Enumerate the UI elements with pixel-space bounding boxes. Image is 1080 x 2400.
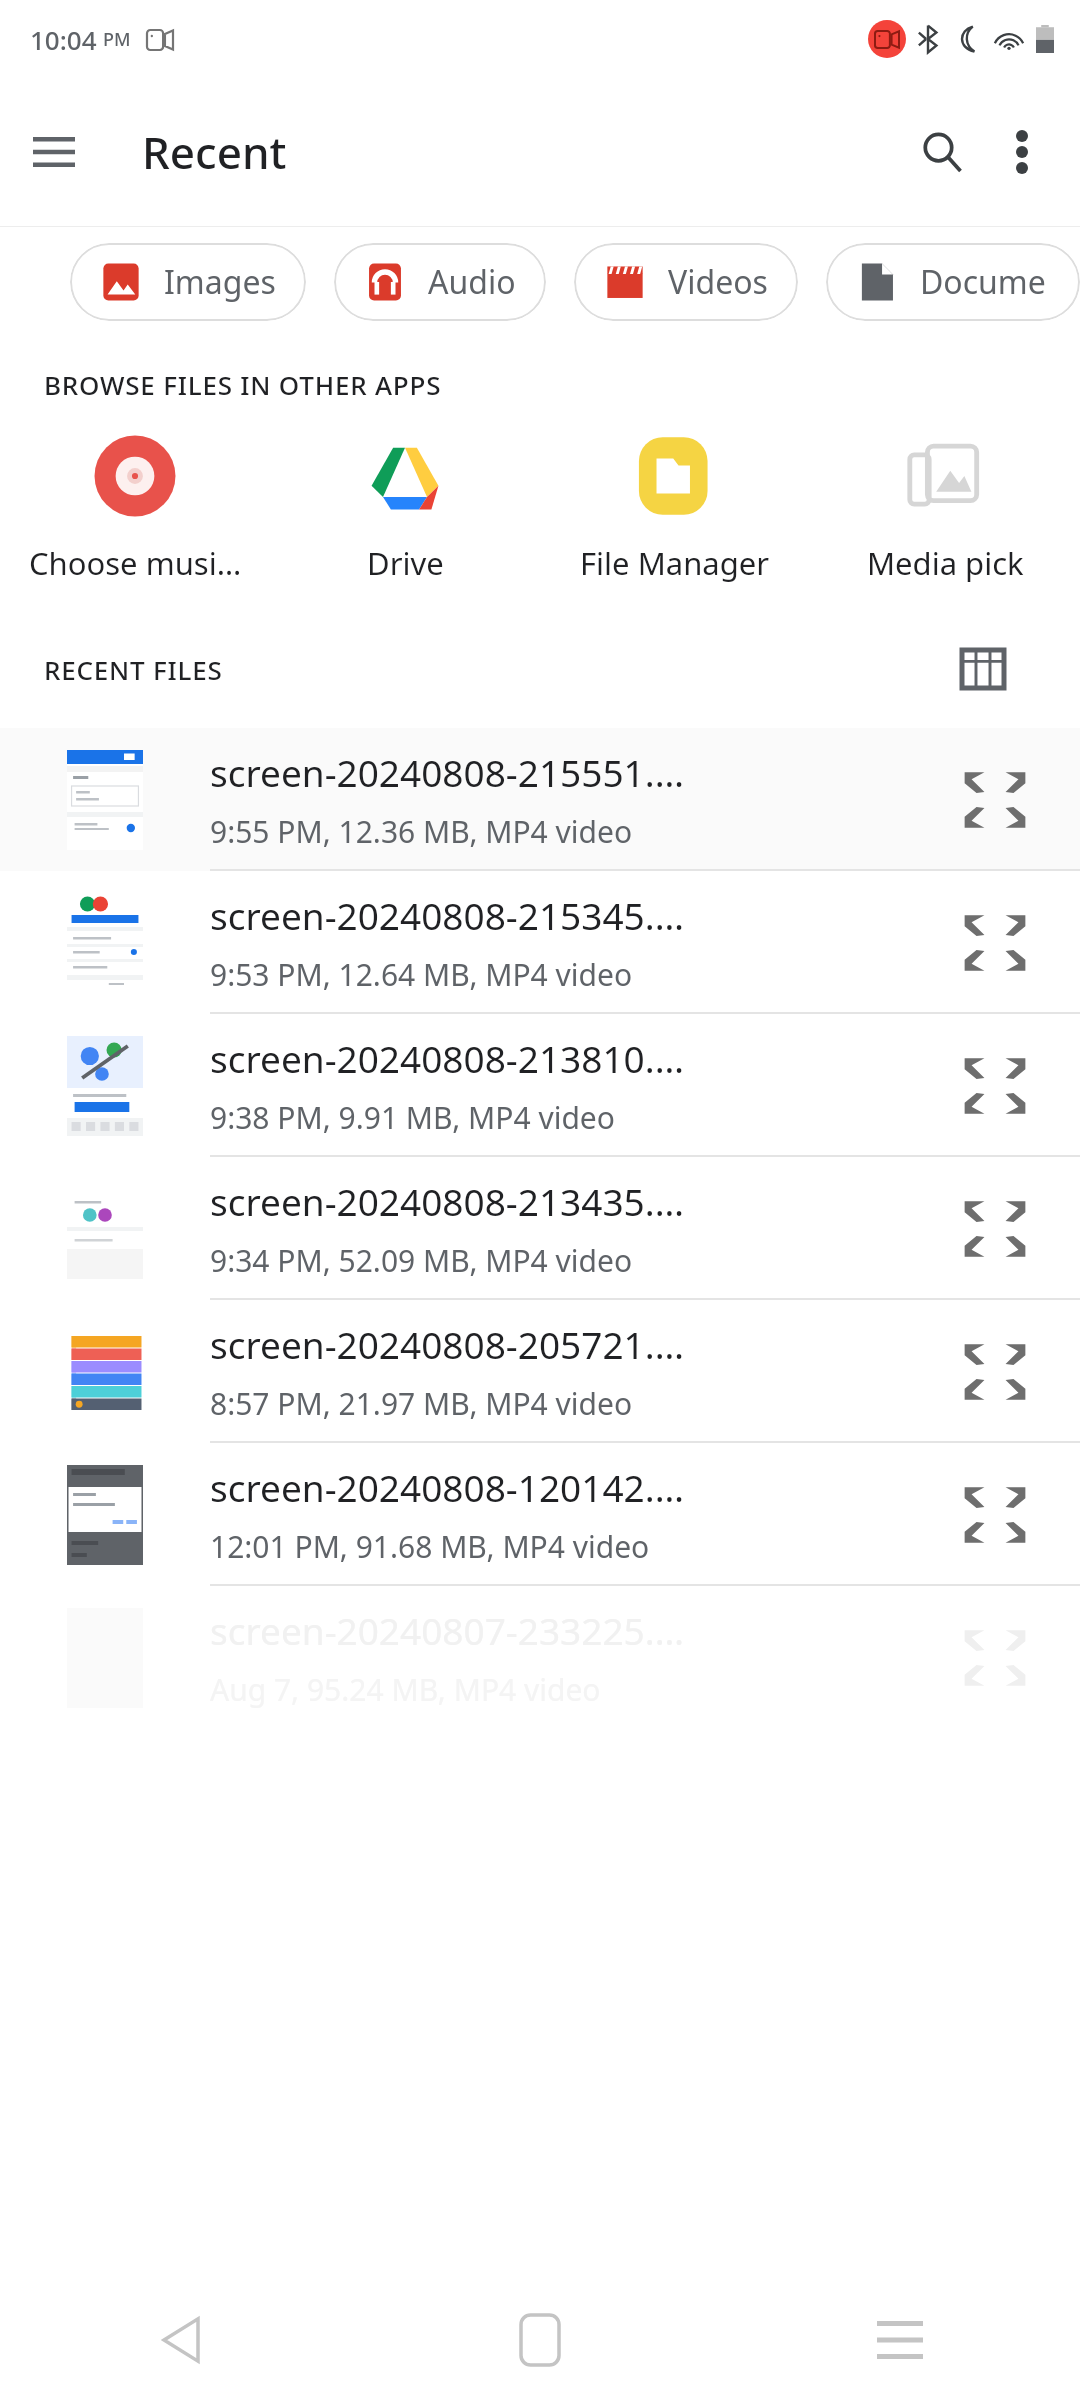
staticText: Audio	[428, 260, 516, 304]
button[interactable]: Grid view	[948, 634, 1018, 704]
button[interactable]: Documents	[826, 243, 1080, 321]
staticText: Aug 7, 95.24 MB, MP4 video	[210, 1669, 601, 1710]
staticText: Images	[164, 260, 276, 304]
button[interactable]: screen-20240808-213810.…	[0, 1014, 1080, 1157]
staticText: RECENT FILES	[44, 652, 223, 687]
button[interactable]: Search	[902, 112, 982, 192]
staticText: 9:55 PM, 12.36 MB, MP4 video	[210, 811, 633, 852]
button[interactable]: File Manager	[540, 432, 810, 610]
staticText: Choose musi…	[29, 542, 242, 584]
staticText: Videos	[668, 260, 768, 304]
staticText: screen-20240808-120142.…	[210, 1462, 684, 1512]
button[interactable]: screen-20240808-215551.…	[0, 728, 1080, 871]
button[interactable]: Expand	[910, 1443, 1080, 1586]
staticText: PM	[103, 27, 131, 52]
button[interactable]: screen-20240808-213435.…	[0, 1157, 1080, 1300]
staticText: Recent	[142, 122, 287, 182]
button[interactable]: Audio	[334, 243, 546, 321]
staticText: 12:01 PM, 91.68 MB, MP4 video	[210, 1526, 650, 1567]
button[interactable]: screen-20240808-205721.…	[0, 1300, 1080, 1443]
button[interactable]: Images	[70, 243, 306, 321]
staticText: 9:53 PM, 12.64 MB, MP4 video	[210, 954, 633, 995]
button[interactable]: Choose musi…	[0, 432, 270, 610]
button[interactable]: More options	[982, 112, 1062, 192]
button[interactable]: Videos	[574, 243, 798, 321]
staticText: screen-20240807-233225.…	[210, 1605, 684, 1655]
staticText: screen-20240808-215345.…	[210, 890, 684, 940]
staticText: 10:04	[30, 22, 97, 57]
staticText: Drive	[367, 542, 444, 584]
button[interactable]: Home	[360, 2280, 720, 2400]
staticText: 9:34 PM, 52.09 MB, MP4 video	[210, 1240, 633, 1281]
staticText: BROWSE FILES IN OTHER APPS	[44, 367, 442, 402]
button[interactable]: Expand	[910, 1157, 1080, 1300]
staticText: 9:38 PM, 9.91 MB, MP4 video	[210, 1097, 615, 1138]
button[interactable]: screen-20240808-215345.…	[0, 871, 1080, 1014]
button[interactable]: Media pick	[810, 432, 1080, 610]
button[interactable]: Recents	[720, 2280, 1080, 2400]
button[interactable]: screen-20240808-120142.…	[0, 1443, 1080, 1586]
staticText: Documents	[920, 260, 1050, 304]
staticText: 8:57 PM, 21.97 MB, MP4 video	[210, 1383, 633, 1424]
staticText: screen-20240808-215551.…	[210, 747, 684, 797]
button[interactable]: Show roots	[20, 118, 88, 186]
staticText: Media pick	[867, 542, 1024, 584]
button[interactable]: Back	[0, 2280, 360, 2400]
staticText: screen-20240808-213435.…	[210, 1176, 684, 1226]
button[interactable]: Expand	[910, 728, 1080, 871]
staticText: screen-20240808-213810.…	[210, 1033, 684, 1083]
staticText: screen-20240808-205721.…	[210, 1319, 684, 1369]
button[interactable]: Expand	[910, 1300, 1080, 1443]
button[interactable]: Expand	[910, 1014, 1080, 1157]
button[interactable]: Expand	[910, 871, 1080, 1014]
button[interactable]: Drive	[270, 432, 540, 610]
staticText: File Manager	[580, 542, 770, 584]
